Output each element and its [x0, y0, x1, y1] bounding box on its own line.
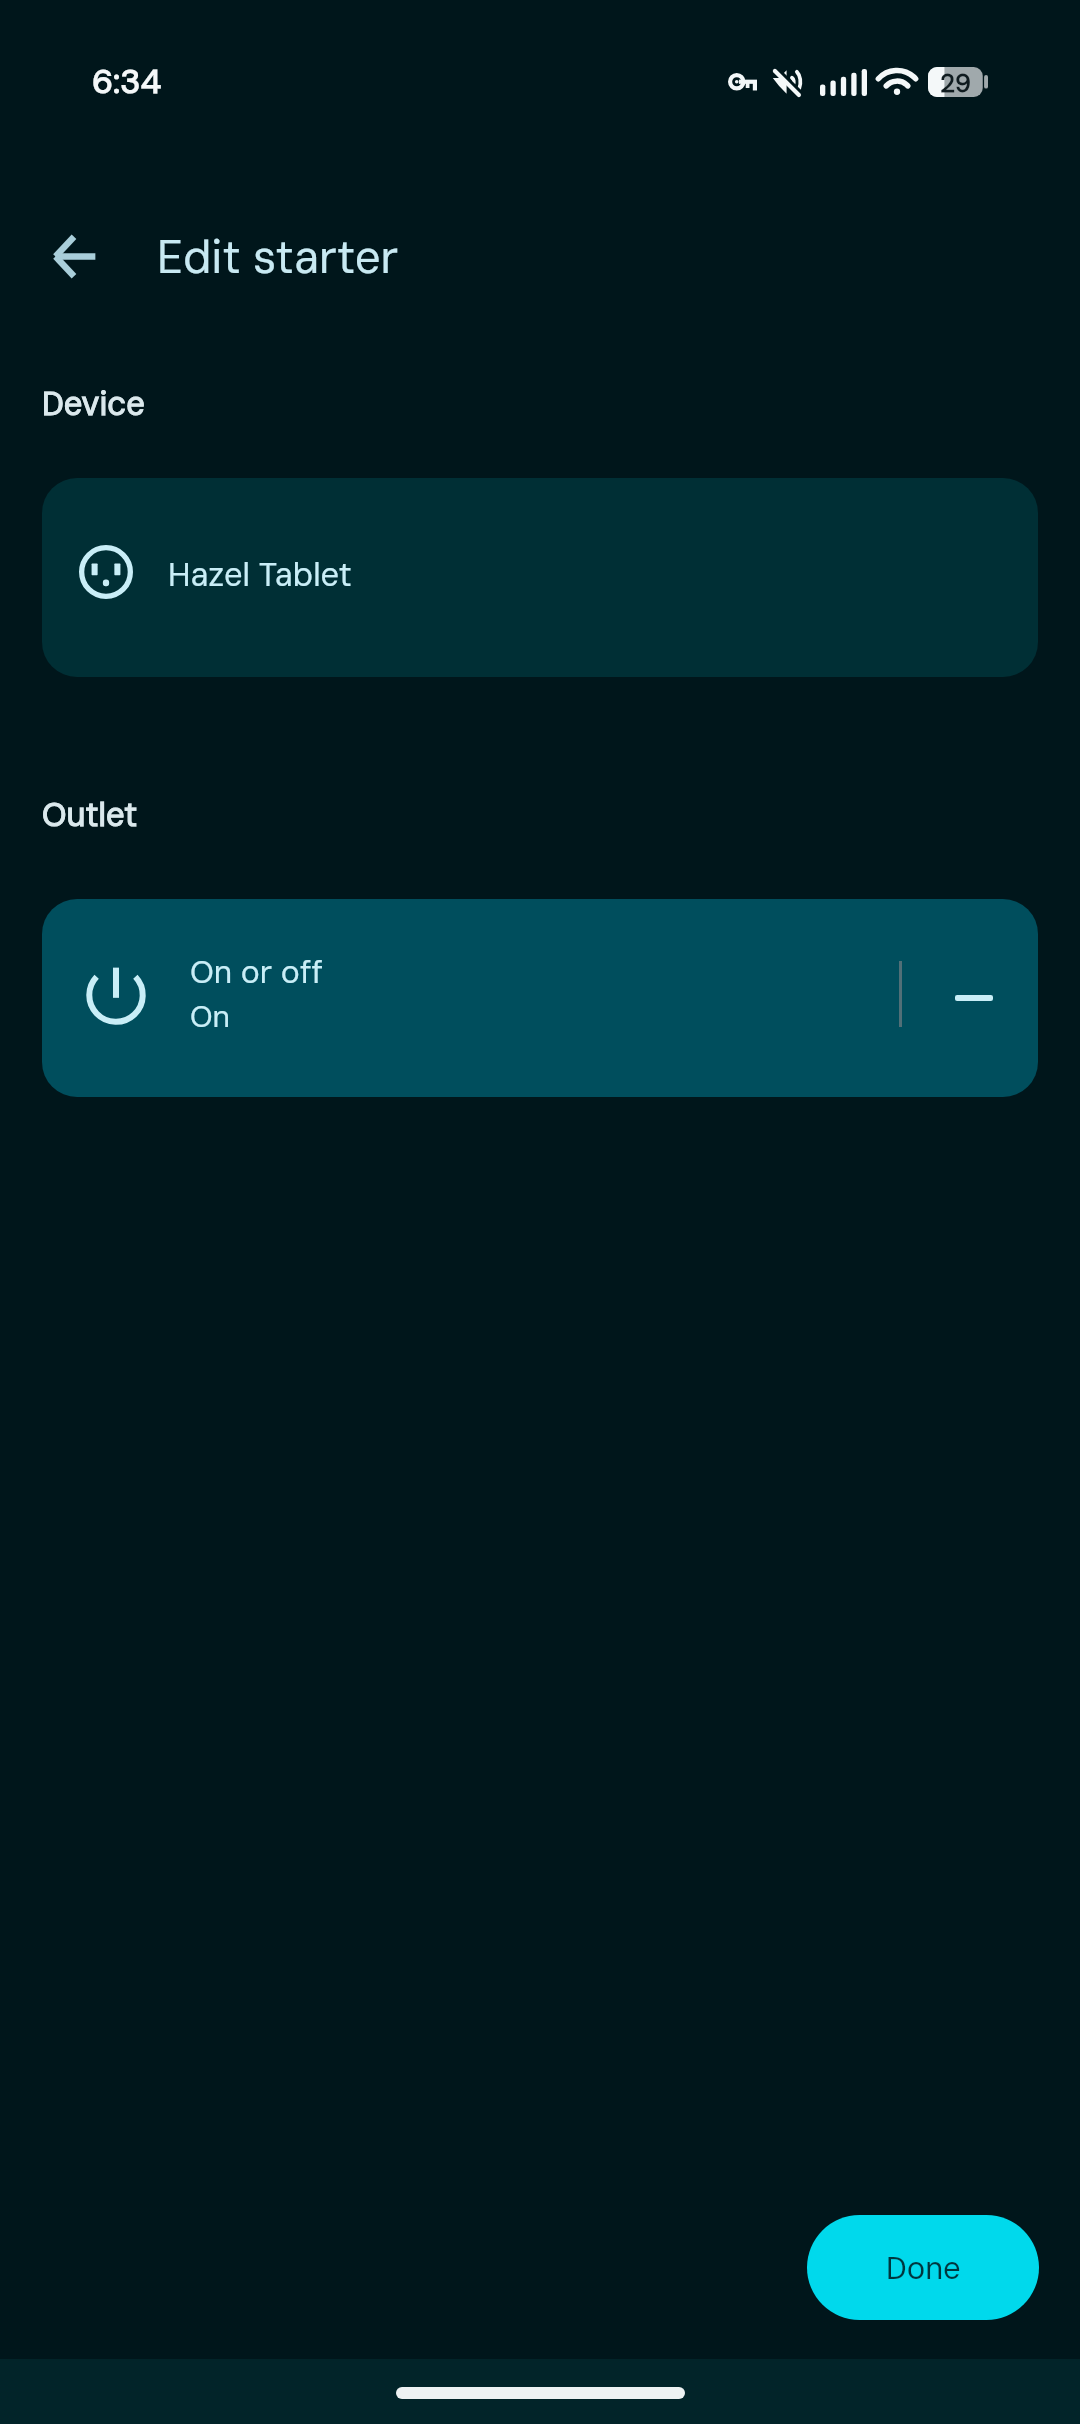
staticText: 29: [940, 67, 971, 97]
staticText: On or off: [190, 951, 323, 993]
button[interactable]: Done: [807, 2215, 1039, 2320]
staticText: Device: [42, 383, 145, 426]
staticText: Outlet: [42, 794, 138, 837]
staticText: Device: [42, 383, 145, 426]
button[interactable]: On or off: [42, 899, 1038, 1097]
button[interactable]: Hazel Tablet: [42, 478, 1038, 677]
button[interactable]: Remove: [930, 953, 1018, 1043]
staticText: On: [190, 997, 231, 1036]
staticText: 6:34: [92, 59, 162, 103]
staticText: Hazel Tablet: [168, 554, 352, 597]
staticText: Done: [886, 2248, 961, 2288]
button[interactable]: Back: [12, 194, 136, 318]
staticText: Outlet: [42, 794, 138, 837]
staticText: Edit starter: [157, 228, 399, 287]
